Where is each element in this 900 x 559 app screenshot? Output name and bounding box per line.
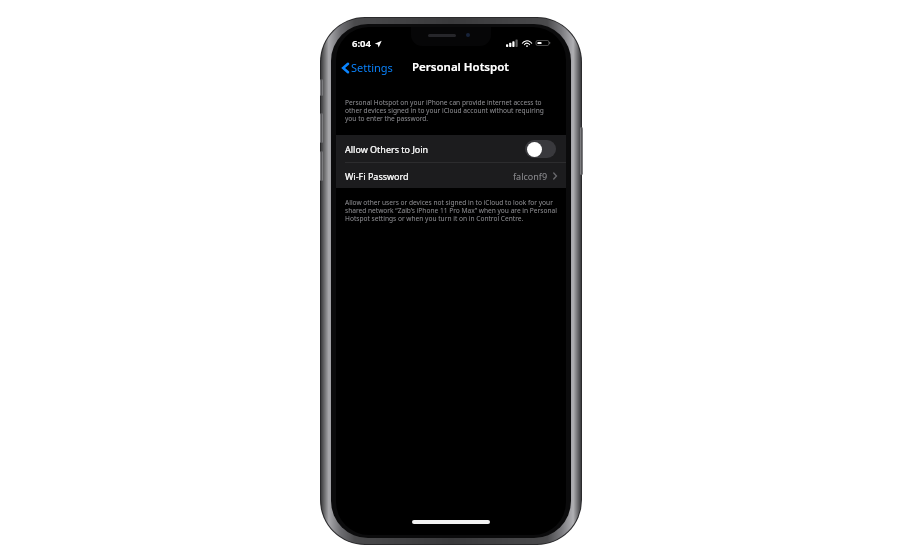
staticText: falconf9 <box>513 170 548 182</box>
staticText: Wi-Fi Password <box>345 170 513 182</box>
button[interactable]: Allow Others to Join <box>336 135 566 162</box>
staticText: 6:04 <box>352 37 371 50</box>
staticText: Settings <box>351 60 393 75</box>
button[interactable]: Settings <box>336 57 399 78</box>
button[interactable]: Wi-Fi Password <box>336 163 566 188</box>
staticText: Personal Hotspot <box>412 59 509 75</box>
button[interactable]: Allow Others to Join toggle <box>525 140 556 158</box>
staticText: Allow Others to Join <box>345 143 525 155</box>
staticText: Personal Hotspot on your iPhone can prov… <box>345 98 553 123</box>
staticText: Allow other users or devices not signed … <box>345 198 557 223</box>
